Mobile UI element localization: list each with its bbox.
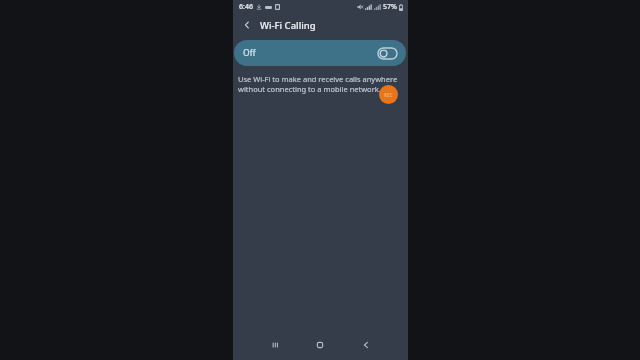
- staticText: 6:46: [239, 2, 253, 12]
- staticText: Off: [243, 47, 256, 59]
- button[interactable]: Recording indicator: [379, 85, 398, 104]
- staticText: Wi-Fi Calling: [260, 19, 316, 32]
- staticText: Use Wi-Fi to make and receive calls anyw…: [238, 74, 402, 94]
- button[interactable]: Off: [234, 40, 406, 66]
- button[interactable]: Recents: [259, 330, 291, 360]
- button[interactable]: Back: [238, 16, 256, 34]
- button[interactable]: Back: [350, 330, 382, 360]
- button[interactable]: Home: [304, 330, 336, 360]
- staticText: 57%: [383, 2, 397, 12]
- staticText: REC: [384, 92, 393, 98]
